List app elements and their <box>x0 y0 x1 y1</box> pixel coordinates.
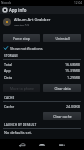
staticText: 15.39MB <box>65 68 80 73</box>
staticText: Uninstall <box>55 36 70 41</box>
staticText: Move to phone <box>10 86 34 91</box>
button[interactable]: Move to phone <box>3 84 40 92</box>
button[interactable]: Clear cache <box>43 112 81 120</box>
staticText: CACHE <box>4 96 15 100</box>
staticText: Show notifications <box>10 46 43 51</box>
button[interactable]: Uninstall <box>43 34 81 42</box>
staticText: LAUNCH BY DEFAULT <box>4 123 37 127</box>
button[interactable]: Force stop <box>3 34 40 42</box>
button[interactable]: Show notifications <box>0 44 84 52</box>
staticText: Clear cache <box>53 114 72 119</box>
button[interactable]: Back <box>13 139 31 150</box>
staticText: 12:04 <box>74 1 83 5</box>
staticText: 16.68MB <box>65 62 80 67</box>
staticText: Clear data <box>54 86 71 91</box>
button[interactable]: Home <box>33 139 51 150</box>
staticText: Cache <box>4 104 15 109</box>
staticText: Album Art Grabber <box>14 17 51 23</box>
staticText: App info <box>9 7 27 13</box>
staticText: App <box>4 68 11 73</box>
staticText: Nooob <box>1 1 12 5</box>
button[interactable]: Recent apps <box>53 139 71 150</box>
staticText: Data <box>4 75 12 80</box>
button[interactable]: App info <box>0 6 9 14</box>
staticText: No defaults set. <box>4 130 32 135</box>
staticText: version 0.9 <box>14 24 29 26</box>
staticText: Total <box>4 62 13 67</box>
staticText: Force stop <box>13 36 30 41</box>
staticText: STORAGE <box>4 54 18 58</box>
staticText: 1.29MB <box>67 75 80 80</box>
staticText: 24.00KB <box>66 104 80 109</box>
button[interactable]: Clear data <box>43 84 81 92</box>
